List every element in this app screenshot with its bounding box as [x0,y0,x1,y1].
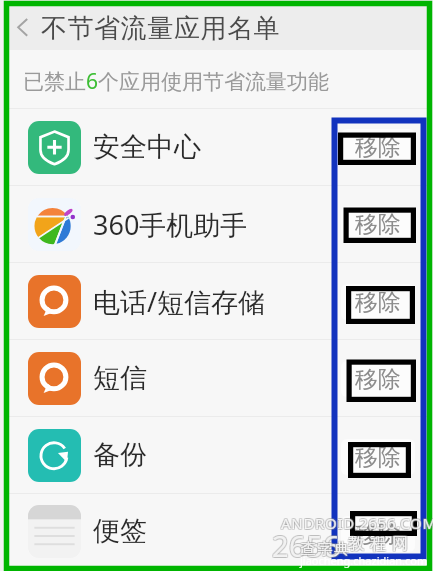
button[interactable]: 便签 [9,494,427,568]
button[interactable]: 移除 [341,206,415,242]
button[interactable]: 电话/短信存储 [9,263,427,339]
staticText: 2656 [273,527,342,566]
staticText: 2656 [271,526,340,565]
staticText: 2656 [271,527,340,566]
staticText: 移除 [355,443,401,472]
button[interactable]: 移除 [341,129,415,165]
staticText: 2656 [273,526,342,565]
staticText: 查字典 [301,541,351,560]
staticText: 电话/短信存储 [93,283,427,320]
button[interactable]: 360手机助手 [9,186,427,262]
staticText: 教程网 [345,535,411,555]
staticText: 查字典 [300,539,350,558]
staticText: 教程网 [346,533,412,553]
staticText: 教程网 [346,535,412,555]
staticText: ANDROID.2656.COM [282,514,433,534]
staticText: 便签 [93,514,427,548]
button[interactable]: 备份 [9,417,427,493]
button[interactable]: 移除 [341,361,415,397]
button[interactable]: 移除 [341,284,415,320]
staticText: ANDROID.2656.COM [280,512,433,532]
staticText: 备份 [93,438,427,472]
button[interactable]: 移除 [341,516,415,552]
staticText: 教程网 [346,534,412,554]
staticText: ANDROID.2656.COM [281,513,433,533]
staticText: 2656 [272,527,341,566]
staticText: 安全中心 [93,130,427,164]
staticText: 移除 [355,520,401,549]
staticText: 查字典 [301,539,351,558]
staticText: 移除 [355,365,401,394]
staticText: 360手机助手 [93,206,427,243]
staticText: 教程网 [344,534,410,554]
staticText: 查字典 [302,540,352,559]
staticText: ANDROID.2656.COM [282,512,433,532]
staticText: 教程网 [344,533,410,553]
button[interactable]: 安全中心 [9,109,427,185]
staticText: 2656 [271,525,340,564]
staticText: 查字典 [302,541,352,560]
staticText: 教程网 [345,533,411,553]
staticText: 教程网 [344,535,410,555]
staticText: 移除 [355,133,401,162]
staticText: ANDROID.2656.COM [280,513,433,533]
staticText: 移除 [355,288,401,317]
button[interactable]: 短信 [9,340,427,416]
staticText: 查字典 [302,539,352,558]
staticText: 2656 [273,525,342,564]
staticText: ANDROID.2656.COM [281,514,433,534]
staticText: jiaocheng.chazidian.com [300,553,428,568]
staticText: 2656 [272,526,341,565]
staticText: 2656 [272,525,341,564]
staticText: 教程网 [345,534,411,554]
staticText: 查字典 [300,540,350,559]
staticText: 不节省流量应用名单 [41,12,281,45]
staticText: ANDROID.2656.COM [280,514,433,534]
button[interactable]: Back [9,12,41,44]
staticText: 移除 [355,210,401,239]
staticText: 查字典 [300,541,350,560]
staticText: 查字典 [301,540,351,559]
staticText: 短信 [93,361,427,395]
button[interactable]: 移除 [341,439,415,475]
staticText: ANDROID.2656.COM [282,513,433,533]
staticText: ANDROID.2656.COM [281,512,433,532]
staticText: 已禁止6个应用使用节省流量功能 [23,67,330,96]
